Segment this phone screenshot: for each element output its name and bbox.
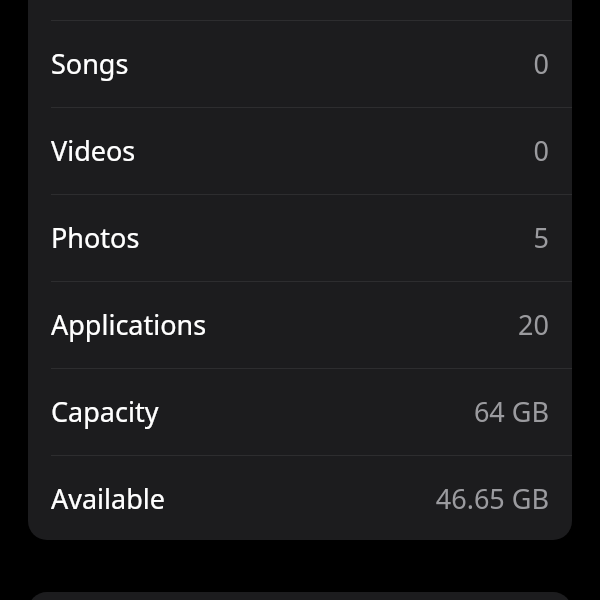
staticText: Available <box>51 480 165 517</box>
staticText: 46.65 GB <box>435 480 549 517</box>
staticText: Videos <box>51 132 136 169</box>
staticText: 0 <box>533 132 549 169</box>
staticText: Applications <box>51 306 207 343</box>
button[interactable]: Available <box>28 455 572 540</box>
button[interactable] <box>28 592 572 600</box>
button[interactable]: Capacity <box>28 368 572 455</box>
staticText: 5 <box>533 219 549 256</box>
button[interactable]: Videos <box>28 107 572 194</box>
staticText: 20 <box>518 306 549 343</box>
button[interactable]: Applications <box>28 281 572 368</box>
staticText: 64 GB <box>473 393 549 430</box>
staticText: Capacity <box>51 393 159 430</box>
staticText: Songs <box>51 45 129 82</box>
button[interactable]: Photos <box>28 194 572 281</box>
button[interactable]: Songs <box>28 20 572 107</box>
staticText: Photos <box>51 219 140 256</box>
staticText: 0 <box>533 45 549 82</box>
